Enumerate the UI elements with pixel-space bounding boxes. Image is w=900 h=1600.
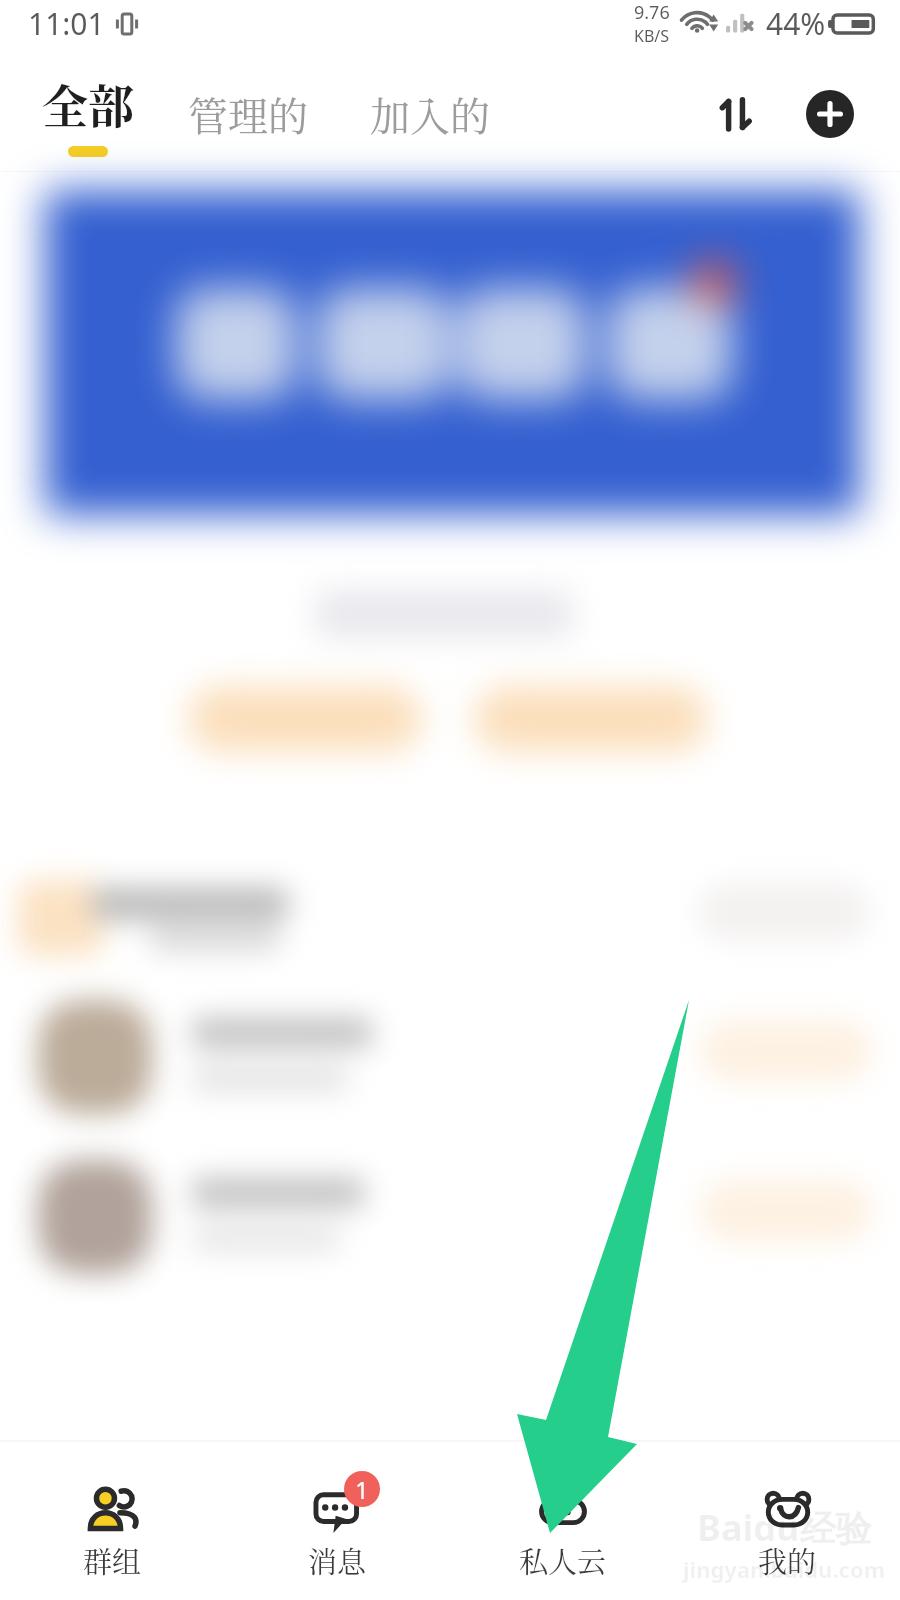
button[interactable]: 我的 xyxy=(675,1442,900,1592)
staticText: 1 xyxy=(355,1473,369,1506)
staticText: 44% xyxy=(766,3,826,44)
staticText: 管理的 xyxy=(188,85,308,142)
staticText: jingyan.baidu.com xyxy=(683,1554,886,1584)
button[interactable]: Sort xyxy=(709,86,765,142)
button[interactable]: 加入的 xyxy=(366,75,494,152)
staticText: 加入的 xyxy=(370,85,490,142)
button[interactable]: 管理的 xyxy=(184,75,312,152)
button[interactable]: 全部 xyxy=(38,64,138,163)
staticText: 私人云 xyxy=(519,1540,607,1582)
staticText: 9.76 xyxy=(634,0,670,25)
button[interactable]: Add xyxy=(806,90,854,138)
staticText: 群组 xyxy=(83,1540,142,1582)
button[interactable]: 1 xyxy=(225,1442,450,1592)
staticText: 11:01 xyxy=(28,3,105,44)
staticText: 我的 xyxy=(758,1540,817,1582)
staticText: 消息 xyxy=(308,1540,367,1582)
staticText: 全部 xyxy=(42,70,134,136)
staticText: Baidu经验 xyxy=(697,1503,872,1552)
button[interactable]: 私人云 xyxy=(450,1442,675,1592)
button[interactable]: 群组 xyxy=(0,1442,225,1592)
staticText: KB/S xyxy=(634,25,670,47)
